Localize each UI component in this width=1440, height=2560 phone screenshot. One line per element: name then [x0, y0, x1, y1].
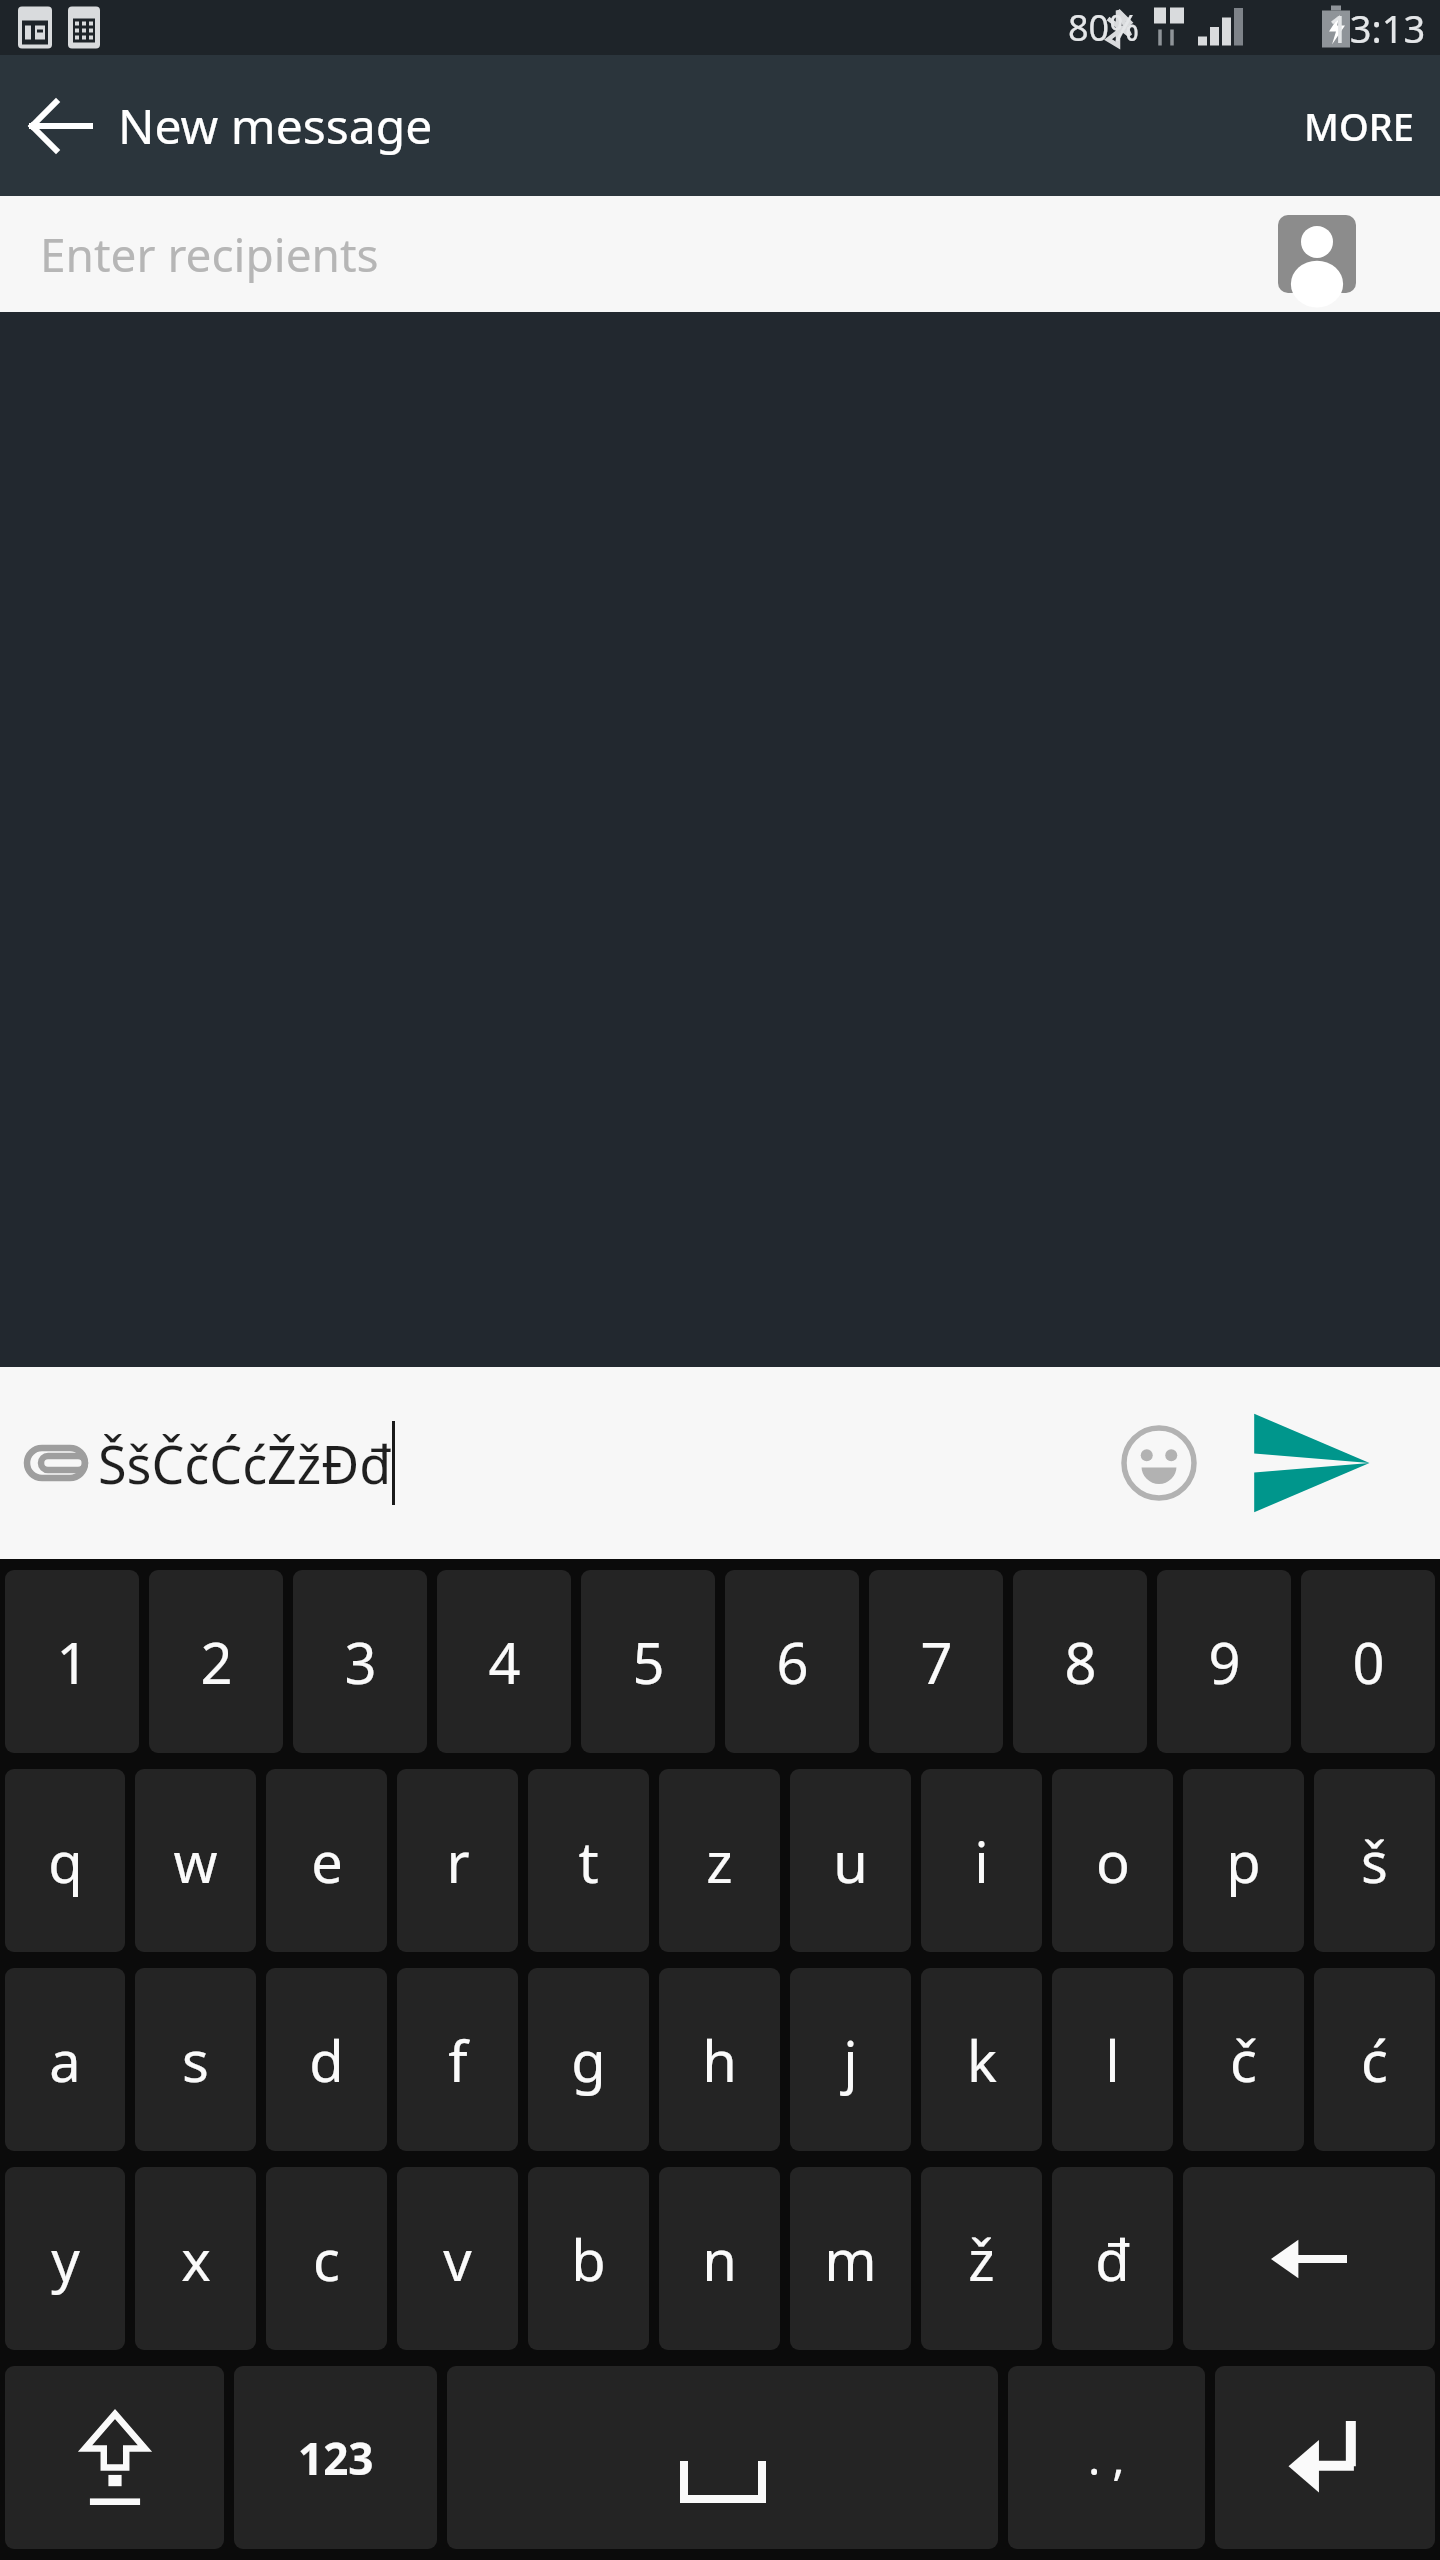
staticText: t — [578, 1823, 599, 1899]
button[interactable]: o — [1052, 1769, 1173, 1952]
button[interactable]: n — [659, 2167, 780, 2350]
button[interactable]: 4 — [437, 1570, 571, 1753]
button[interactable]: đ — [1052, 2167, 1173, 2350]
button[interactable]: Enter recipients — [0, 196, 1440, 312]
button[interactable]: m — [790, 2167, 911, 2350]
staticText: 4 — [488, 1624, 521, 1700]
button[interactable]: MORE — [1278, 80, 1440, 172]
staticText: z — [706, 1823, 733, 1899]
staticText: 1 — [56, 1624, 89, 1700]
button[interactable]: ć — [1314, 1968, 1435, 2151]
staticText: d — [309, 2022, 344, 2098]
staticText: a — [49, 2022, 81, 2098]
staticText: 5 — [632, 1624, 665, 1700]
button[interactable]: š — [1314, 1769, 1435, 1952]
staticText: . , — [1088, 2426, 1125, 2489]
button[interactable]: 6 — [725, 1570, 859, 1753]
staticText: j — [843, 2022, 858, 2098]
button[interactable]: 8 — [1013, 1570, 1147, 1753]
button[interactable]: y — [5, 2167, 125, 2350]
button[interactable]: Choose contacts — [1278, 215, 1356, 293]
button[interactable]: i — [921, 1769, 1042, 1952]
button[interactable]: v — [397, 2167, 518, 2350]
button[interactable]: 9 — [1157, 1570, 1291, 1753]
staticText: 2 — [200, 1624, 233, 1700]
staticText: ŠšČčĆćŽžĐđ — [98, 1428, 392, 1499]
staticText: 13:13 — [1328, 2, 1426, 54]
button[interactable]: f — [397, 1968, 518, 2151]
staticText: ž — [968, 2221, 995, 2297]
staticText: l — [1105, 2022, 1120, 2098]
button[interactable]: x — [135, 2167, 256, 2350]
staticText: 6 — [776, 1624, 809, 1700]
button[interactable]: ž — [921, 2167, 1042, 2350]
button[interactable]: s — [135, 1968, 256, 2151]
button[interactable]: d — [266, 1968, 387, 2151]
button[interactable]: 123 — [234, 2366, 437, 2549]
button[interactable]: Enter — [1215, 2366, 1435, 2549]
staticText: u — [833, 1823, 868, 1899]
staticText: b — [571, 2221, 606, 2297]
button[interactable]: Send — [1248, 1407, 1372, 1519]
staticText: 123 — [298, 2428, 374, 2488]
staticText: 80% — [1068, 3, 1140, 52]
staticText: q — [48, 1823, 83, 1899]
button[interactable]: 7 — [869, 1570, 1003, 1753]
staticText: v — [443, 2221, 472, 2297]
staticText: x — [181, 2221, 211, 2297]
button[interactable]: j — [790, 1968, 911, 2151]
staticText: š — [1361, 1823, 1388, 1899]
button[interactable]: z — [659, 1769, 780, 1952]
button[interactable]: 2 — [149, 1570, 283, 1753]
staticText: ć — [1361, 2022, 1388, 2098]
button[interactable]: Backspace — [1183, 2167, 1435, 2350]
button[interactable]: u — [790, 1769, 911, 1952]
staticText: đ — [1095, 2221, 1130, 2297]
staticText: New message — [118, 93, 433, 158]
button[interactable]: b — [528, 2167, 649, 2350]
button[interactable]: Shift — [5, 2366, 224, 2549]
button[interactable]: c — [266, 2167, 387, 2350]
button[interactable]: q — [5, 1769, 125, 1952]
staticText: k — [967, 2022, 997, 2098]
staticText: g — [571, 2022, 606, 2098]
staticText: 0 — [1352, 1624, 1385, 1700]
button[interactable]: l — [1052, 1968, 1173, 2151]
button[interactable]: Back — [22, 86, 102, 166]
button[interactable]: t — [528, 1769, 649, 1952]
staticText: 7 — [920, 1624, 953, 1700]
staticText: e — [311, 1823, 343, 1899]
button[interactable]: 1 — [5, 1570, 139, 1753]
staticText: f — [448, 2022, 468, 2098]
staticText: r — [446, 1823, 470, 1899]
staticText: Enter recipients — [40, 223, 379, 286]
button[interactable]: a — [5, 1968, 125, 2151]
button[interactable]: h — [659, 1968, 780, 2151]
button[interactable]: p — [1183, 1769, 1304, 1952]
button[interactable]: r — [397, 1769, 518, 1952]
button[interactable]: k — [921, 1968, 1042, 2151]
staticText: 8 — [1064, 1624, 1097, 1700]
staticText: m — [824, 2221, 877, 2297]
staticText: w — [173, 1823, 218, 1899]
staticText: h — [702, 2022, 737, 2098]
button[interactable]: e — [266, 1769, 387, 1952]
button[interactable]: . , — [1008, 2366, 1205, 2549]
button[interactable]: 3 — [293, 1570, 427, 1753]
button[interactable]: č — [1183, 1968, 1304, 2151]
staticText: s — [182, 2022, 209, 2098]
button[interactable]: Space — [447, 2366, 998, 2549]
staticText: č — [1230, 2022, 1257, 2098]
button[interactable]: Emoji — [1118, 1422, 1200, 1504]
button[interactable]: w — [135, 1769, 256, 1952]
staticText: n — [702, 2221, 737, 2297]
button[interactable]: g — [528, 1968, 649, 2151]
staticText: 3 — [344, 1624, 377, 1700]
button[interactable]: 0 — [1301, 1570, 1435, 1753]
staticText: o — [1096, 1823, 1130, 1899]
staticText: 9 — [1208, 1624, 1241, 1700]
button[interactable]: Attach — [18, 1424, 96, 1502]
staticText: MORE — [1304, 100, 1414, 152]
staticText: p — [1226, 1823, 1261, 1899]
button[interactable]: 5 — [581, 1570, 715, 1753]
